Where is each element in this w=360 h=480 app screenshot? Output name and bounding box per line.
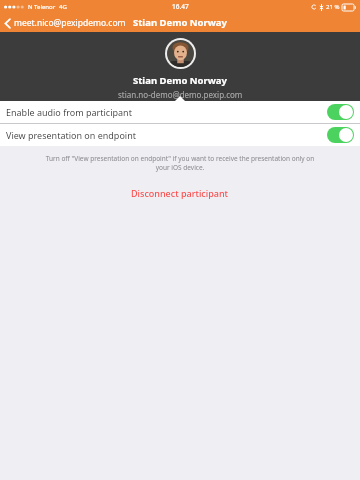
other: Back [4, 18, 11, 29]
staticText: 4G [59, 3, 67, 11]
staticText: View presentation on endpoint [6, 129, 136, 141]
staticText: Enable audio from participant [6, 106, 132, 118]
staticText: meet.nico@pexipdemo.com [14, 17, 126, 29]
staticText: Turn off "View presentation on endpoint"… [40, 154, 320, 172]
button[interactable]: Back [0, 15, 130, 31]
button[interactable]: View presentation on endpoint [0, 124, 360, 146]
button[interactable]: Toggle on [327, 104, 354, 120]
button[interactable]: Toggle on [327, 127, 354, 143]
button[interactable]: Disconnect participant [0, 184, 360, 202]
staticText: Stian Demo Norway [133, 16, 227, 29]
staticText: 21 % [326, 3, 340, 11]
staticText: N Telenor [28, 3, 56, 11]
staticText: Disconnect participant [131, 187, 229, 199]
staticText: stian.no-demo@demo.pexip.com [118, 89, 243, 100]
staticText: Stian Demo Norway [133, 74, 227, 87]
button[interactable]: Enable audio from participant [0, 101, 360, 123]
staticText: 16.47 [172, 2, 189, 11]
